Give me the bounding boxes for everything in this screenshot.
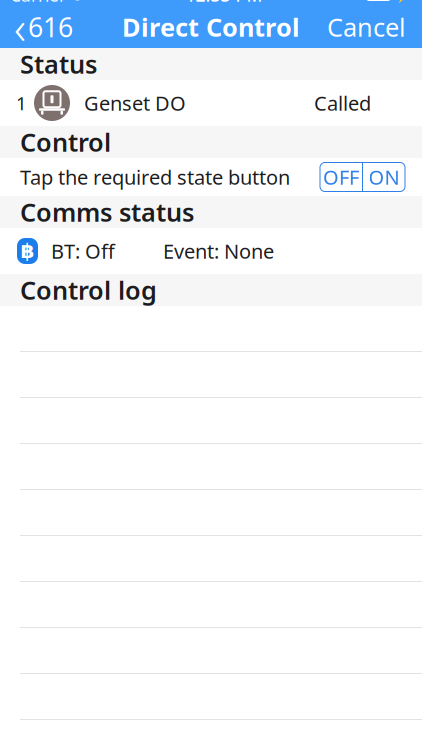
button[interactable]: ON <box>363 162 405 191</box>
button[interactable]: 1 <box>0 80 422 126</box>
staticText: 12:33 PM <box>185 0 262 6</box>
staticText: Carrier <box>10 0 66 6</box>
staticText: Direct Control <box>122 10 300 44</box>
staticText: OFF <box>323 164 359 190</box>
staticText: ON <box>368 164 399 190</box>
staticText: Genset DO <box>84 90 186 116</box>
staticText: Control <box>20 125 111 159</box>
staticText: Event: None <box>163 238 274 264</box>
staticText: Tap the required state button <box>20 164 290 190</box>
staticText: Control log <box>20 273 157 307</box>
button[interactable]: Cancel <box>317 6 416 48</box>
staticText: ‹ <box>14 0 26 57</box>
staticText: ฿ <box>20 240 34 262</box>
staticText: ● <box>72 0 82 2</box>
button[interactable]: ‹ <box>6 6 81 48</box>
staticText: 1 <box>16 91 27 115</box>
staticText: 616 <box>28 9 73 45</box>
staticText: Cancel <box>327 10 406 44</box>
button[interactable]: OFF <box>320 162 362 191</box>
staticText: Comms status <box>20 195 194 229</box>
staticText: Called <box>314 90 371 116</box>
staticText: ⚡ <box>395 0 412 3</box>
staticText: BT: Off <box>51 238 115 264</box>
staticText: Status <box>20 47 97 81</box>
